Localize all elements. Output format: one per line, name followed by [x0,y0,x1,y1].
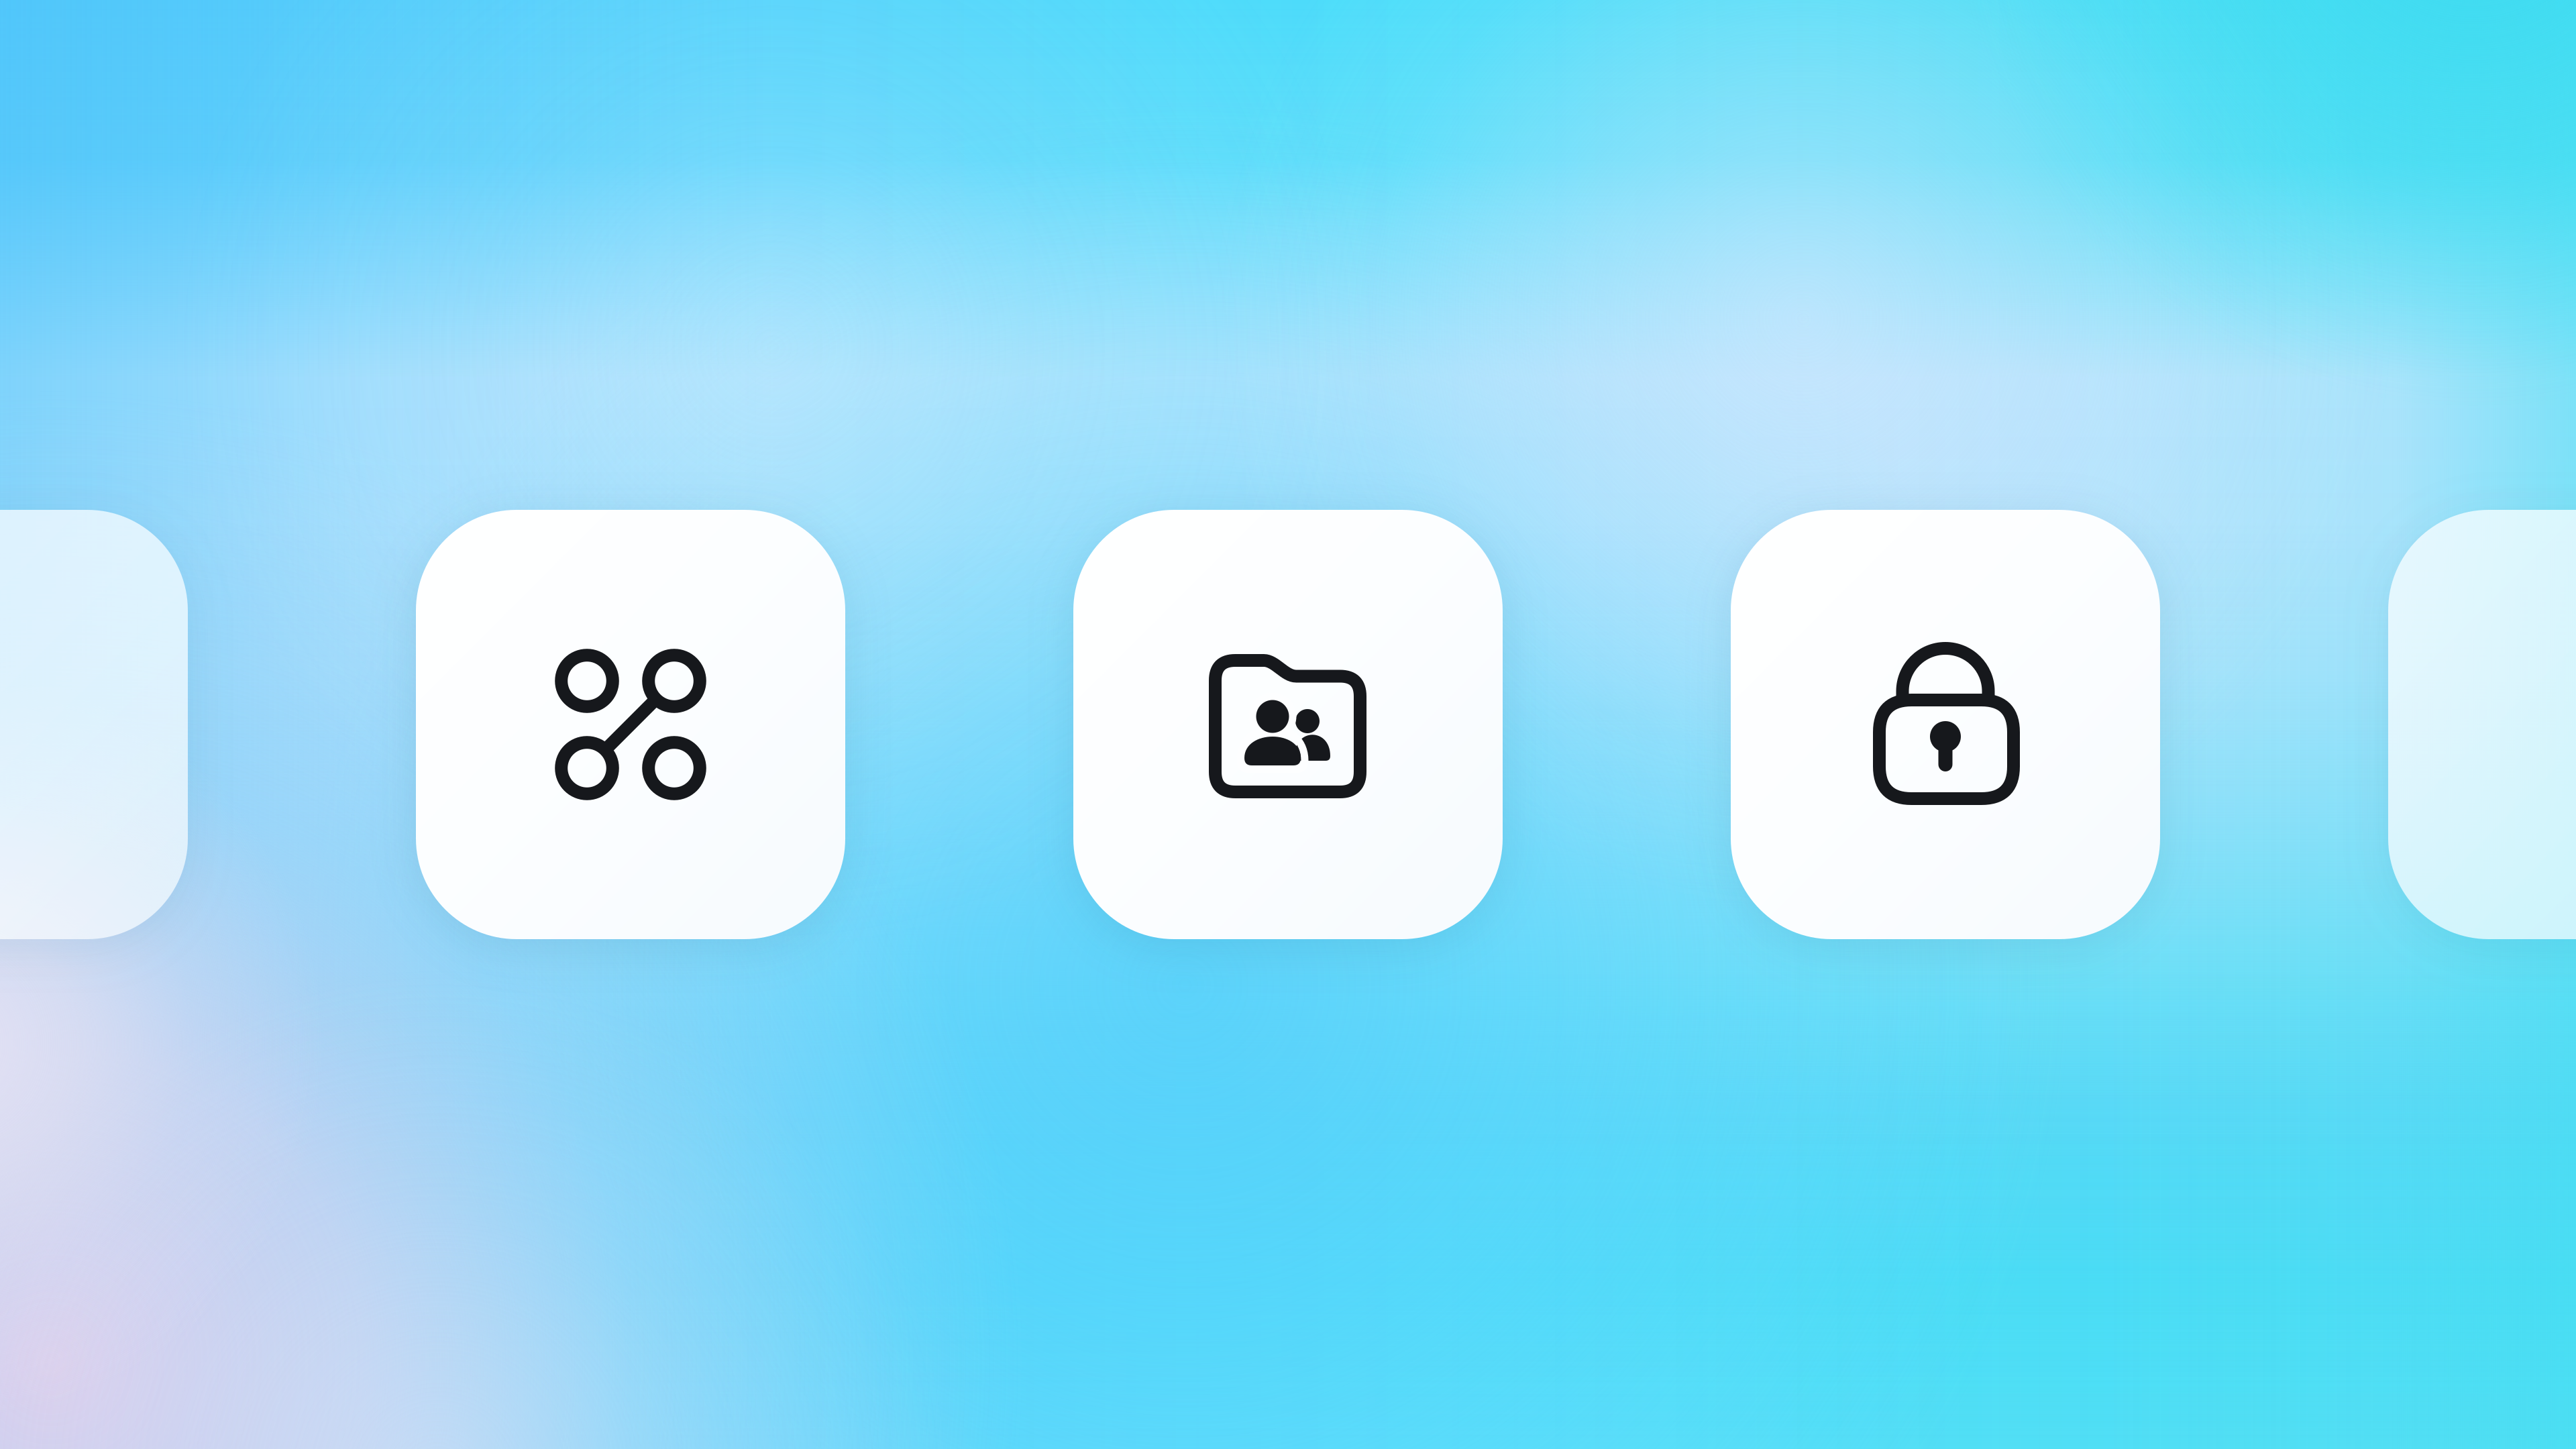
button[interactable]: Shared folder [1073,510,1503,939]
button[interactable]: Next [2388,510,2576,939]
button[interactable]: Previous [0,510,188,939]
button[interactable]: Locked [1731,510,2160,939]
button[interactable]: Share [416,510,845,939]
